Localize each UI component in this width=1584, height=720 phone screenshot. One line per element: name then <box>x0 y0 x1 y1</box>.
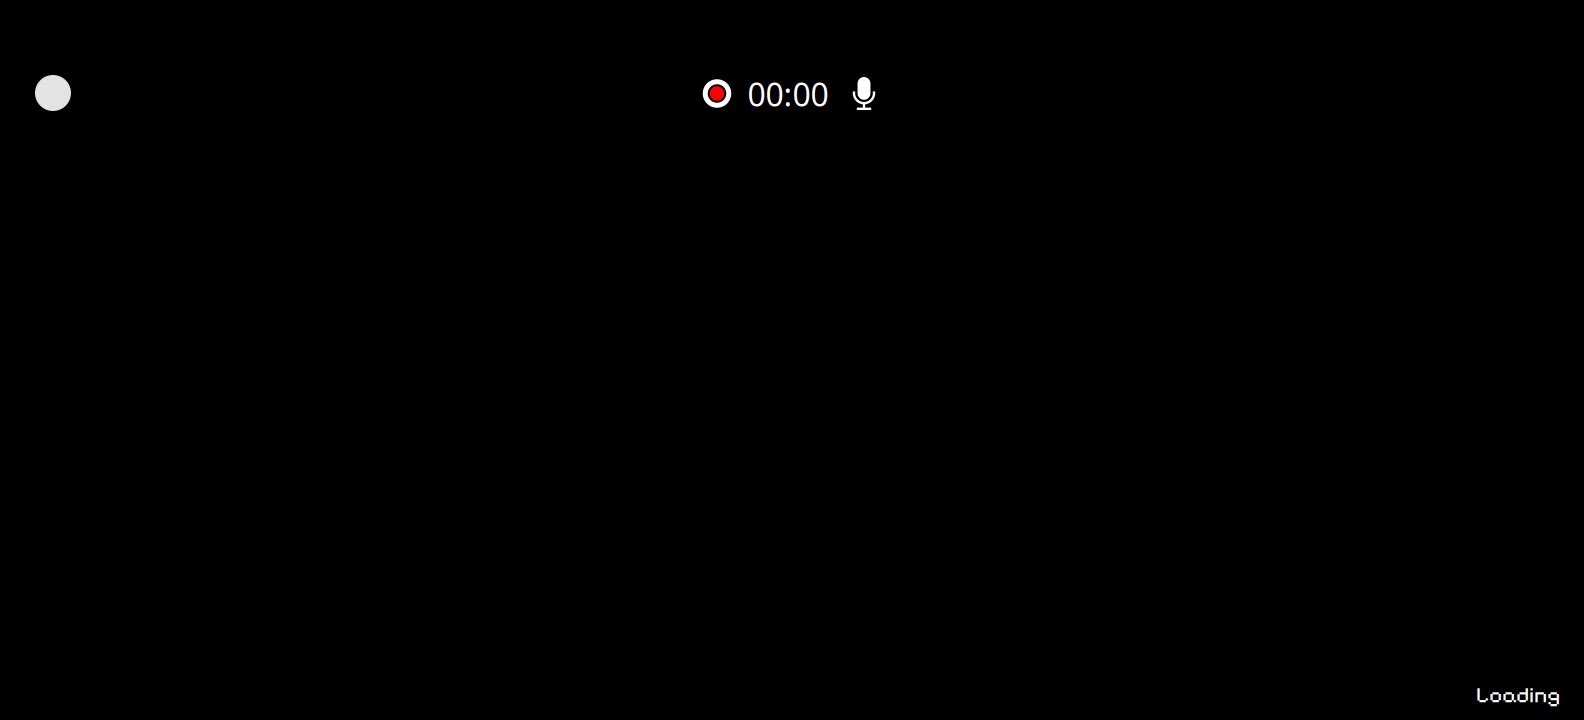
staticText: Loading <box>1476 681 1560 709</box>
staticText: 00:00 <box>747 73 828 115</box>
button[interactable]: Shutter <box>35 75 71 111</box>
button[interactable]: Stop recording <box>703 79 731 108</box>
button[interactable]: Microphone <box>853 77 875 110</box>
